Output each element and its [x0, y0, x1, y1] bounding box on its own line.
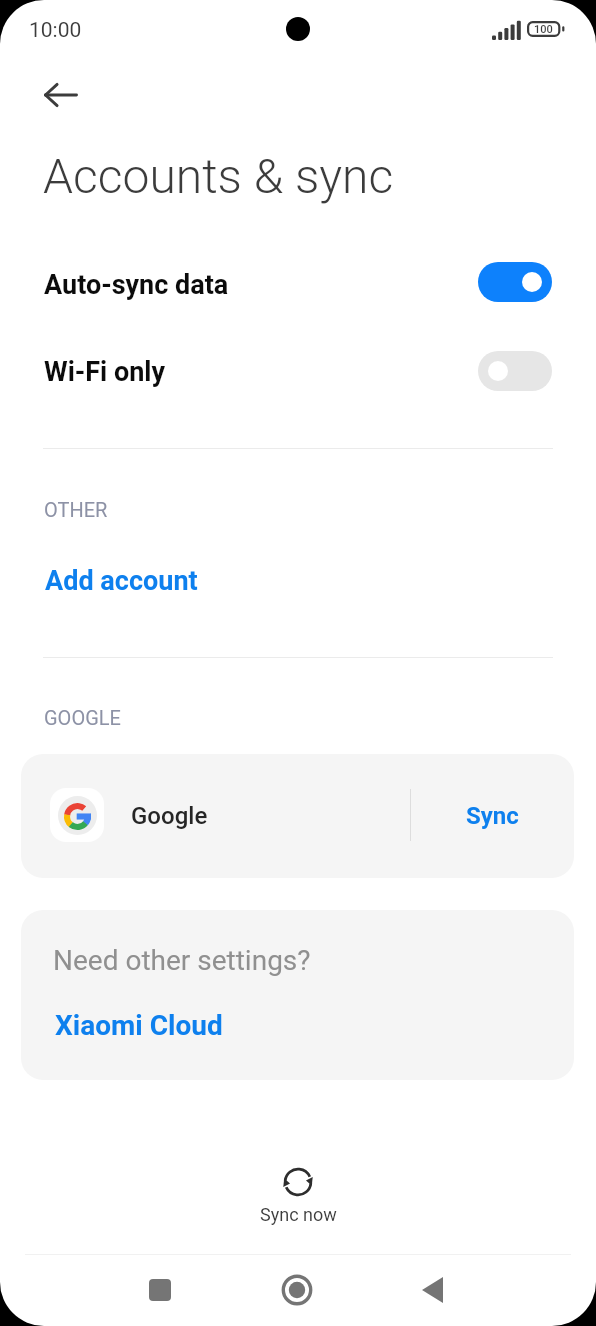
- button[interactable]: Auto-sync data: [0, 248, 596, 316]
- staticText: OTHER: [44, 498, 108, 521]
- button[interactable]: Wi-Fi only: [0, 337, 596, 405]
- staticText: 10:00: [29, 18, 82, 43]
- button[interactable]: Google: [21, 754, 574, 878]
- staticText: Add account: [45, 565, 198, 597]
- button[interactable]: Home: [261, 1254, 333, 1326]
- button[interactable]: Add account: [21, 556, 574, 608]
- staticText: Xiaomi Cloud: [55, 1009, 223, 1042]
- staticText: Need other settings?: [53, 944, 311, 977]
- staticText: Wi-Fi only: [44, 356, 166, 388]
- staticText: Sync now: [260, 1204, 337, 1225]
- staticText: Sync: [466, 802, 519, 830]
- button[interactable]: Back: [396, 1254, 468, 1326]
- staticText: 100: [534, 23, 553, 36]
- button[interactable]: Xiaomi Cloud: [21, 998, 574, 1054]
- staticText: Accounts & sync: [43, 148, 394, 204]
- button[interactable]: Back: [33, 71, 89, 119]
- button[interactable]: Sync: [411, 754, 574, 878]
- staticText: GOOGLE: [44, 706, 121, 729]
- button[interactable]: Sync now: [218, 1158, 378, 1236]
- staticText: Auto-sync data: [44, 269, 229, 301]
- staticText: Google: [131, 802, 208, 830]
- button[interactable]: Recent apps: [124, 1254, 196, 1326]
